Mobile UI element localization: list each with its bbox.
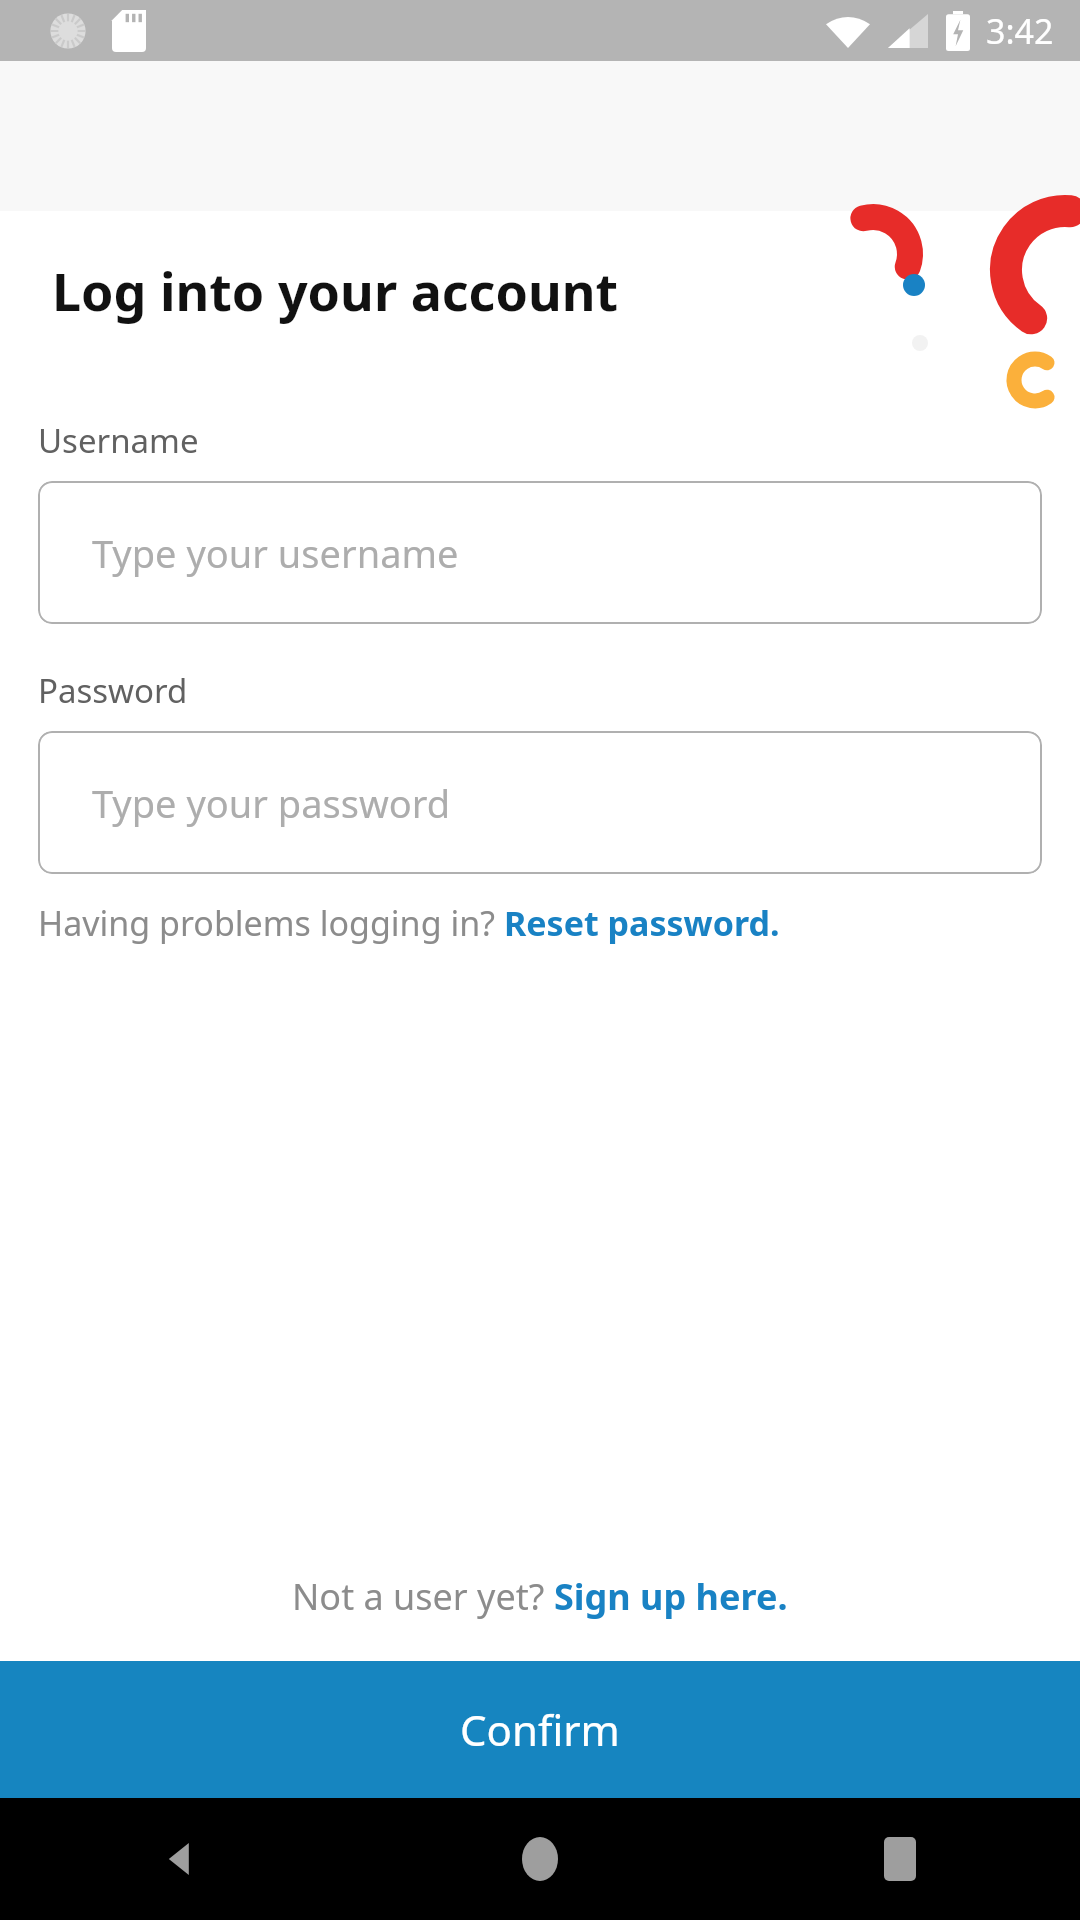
staticText: Confirm — [460, 1701, 620, 1758]
button[interactable]: Back — [120, 1799, 240, 1919]
staticText: Username — [38, 418, 199, 463]
staticText: Not a user yet? — [292, 1572, 554, 1621]
button[interactable]: Sign up here. — [554, 1572, 788, 1621]
staticText: Having problems logging in? — [38, 900, 504, 946]
button[interactable]: Reset password. — [504, 900, 780, 946]
button[interactable]: Type your password — [38, 731, 1042, 874]
staticText: Type your username — [92, 527, 459, 579]
staticText: Sign up here. — [554, 1572, 788, 1621]
staticText: Type your password — [92, 777, 451, 829]
staticText: Log into your account — [52, 255, 619, 326]
button[interactable]: Confirm — [0, 1661, 1080, 1798]
staticText: Reset password. — [504, 900, 780, 946]
button[interactable]: Recent apps — [840, 1799, 960, 1919]
button[interactable]: Type your username — [38, 481, 1042, 624]
staticText: 3:42 — [986, 8, 1054, 54]
staticText: Password — [38, 668, 188, 713]
button[interactable]: Home — [480, 1799, 600, 1919]
